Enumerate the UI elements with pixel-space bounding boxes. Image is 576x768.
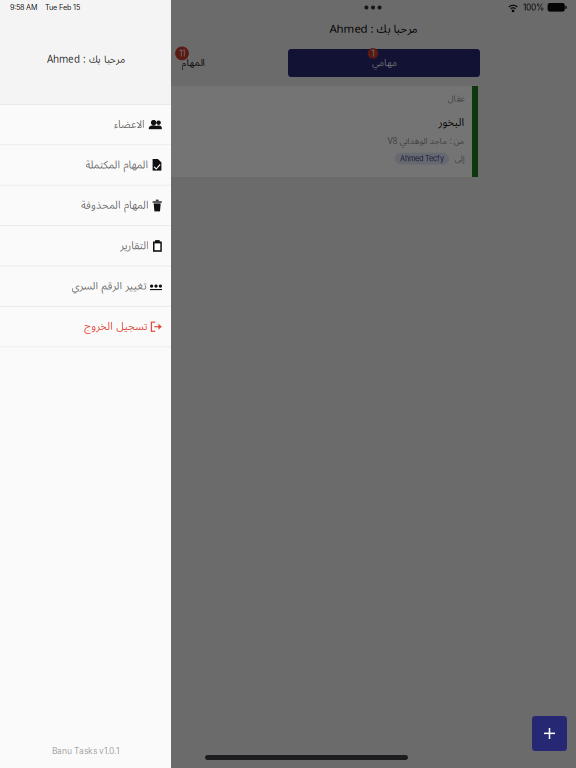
staticText: المهام	[181, 53, 204, 73]
staticText: عقال	[447, 89, 464, 108]
button[interactable]: Add task	[532, 716, 567, 751]
staticText: المهام المكتملة	[85, 154, 148, 176]
button[interactable]: المهام المكتملة	[0, 145, 171, 186]
staticText: Banu Tasks v1.0.1	[52, 746, 119, 756]
staticText: تسجيل الخروج	[84, 315, 147, 338]
button[interactable]: التقارير	[0, 226, 171, 266]
button[interactable]: تسجيل الخروج	[0, 307, 171, 347]
staticText: مرحبا بك : Ahmed	[46, 49, 124, 70]
staticText: Ahmed Tecfy	[400, 154, 444, 163]
staticText: مرحبا بك : Ahmed	[329, 17, 417, 41]
staticText: 1	[371, 48, 374, 58]
button[interactable]: تغيير الرقم السري	[0, 266, 171, 307]
staticText: 100%	[523, 2, 544, 12]
staticText: 9:58 AM	[10, 3, 38, 12]
staticText: 11	[179, 48, 185, 58]
staticText: مهامي	[371, 53, 396, 73]
staticText: البخور	[438, 111, 464, 134]
staticText: المهام المحذوفة	[81, 194, 149, 217]
button[interactable]: مهامي	[288, 49, 480, 77]
staticText: التقارير	[120, 234, 149, 257]
staticText: تغيير الرقم السري	[71, 275, 146, 297]
button[interactable]: المهام	[162, 49, 222, 77]
staticText: الاعضاء	[114, 113, 145, 136]
staticText: إلى	[454, 149, 464, 168]
button[interactable]: الاعضاء	[0, 105, 171, 145]
staticText: من : ماجد الوهداني V8	[387, 132, 464, 150]
staticText: Tue Feb 15	[45, 3, 80, 12]
button[interactable]: المهام المحذوفة	[0, 186, 171, 226]
